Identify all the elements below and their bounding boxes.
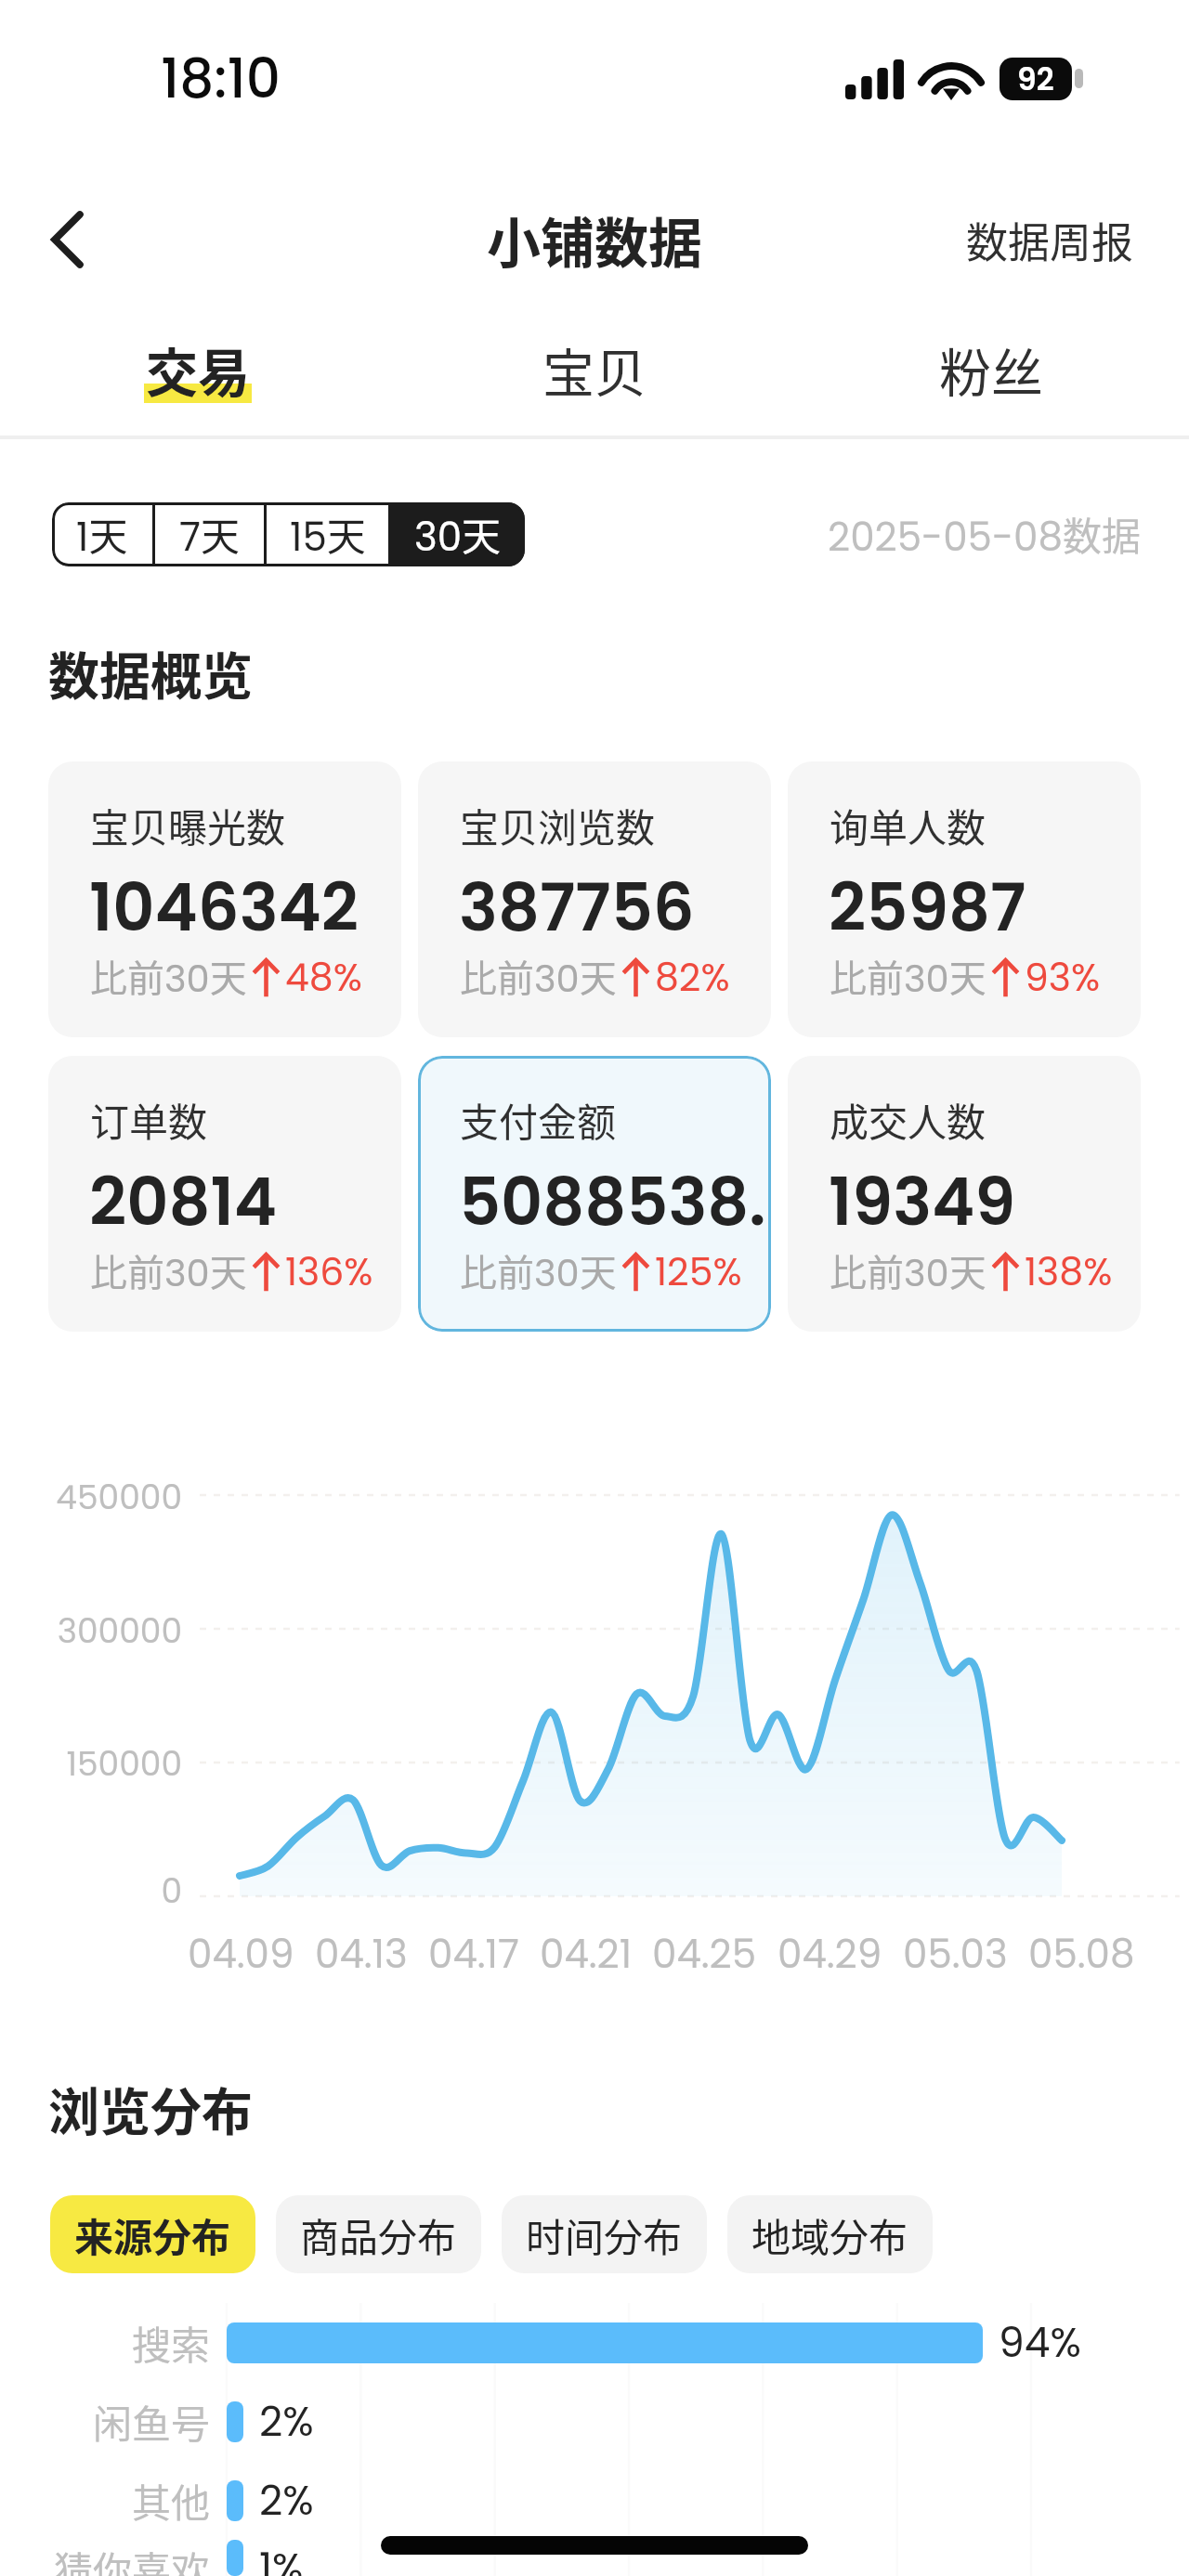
staticText: 数据概览 [48,635,254,709]
staticText: 闲鱼号 [0,2393,210,2450]
button[interactable]: 订单数 [48,1056,401,1332]
staticText: 粉丝 [939,332,1043,407]
staticText: 48% [285,951,362,1004]
staticText: 比前30天 [460,949,617,1005]
button[interactable]: 交易 [0,309,396,428]
staticText: 猜你喜欢 [0,2540,210,2576]
staticText: 300000 [0,1607,182,1654]
staticText: 25987 [829,862,1026,953]
staticText: 05.03 [903,1927,1008,1982]
button[interactable]: 搜索 [0,2303,1189,2382]
button[interactable]: 数据周报 [959,199,1142,281]
staticText: 2025-05-08数据 [828,505,1141,564]
button[interactable]: 闲鱼号 [0,2382,1189,2461]
staticText: 搜索 [0,2314,210,2371]
staticText: 宝贝浏览数 [460,797,656,853]
staticText: 1046342 [89,862,359,953]
staticText: 成交人数 [830,1091,986,1148]
staticText: 18:10 [161,41,281,116]
staticText: 94% [999,2314,1081,2372]
staticText: 7天 [179,505,240,564]
staticText: 交易 [146,332,250,407]
staticText: 138% [1025,1245,1113,1298]
staticText: 1天 [76,505,128,564]
staticText: 宝贝曝光数 [90,797,286,853]
button[interactable]: 粉丝 [792,309,1189,428]
button[interactable]: 7天 [155,502,264,566]
button[interactable]: 时间分布 [502,2195,707,2273]
staticText: 04.13 [315,1927,408,1982]
staticText: 30天 [414,505,502,564]
staticText: 19349 [829,1156,1016,1247]
button[interactable]: 宝贝浏览数 [418,761,771,1037]
staticText: 2% [259,2393,314,2451]
staticText: 0 [0,1867,182,1914]
staticText: 商品分布 [300,2206,457,2263]
button[interactable]: Back [13,186,121,293]
button[interactable]: 商品分布 [276,2195,481,2273]
staticText: 93% [1025,951,1101,1004]
button[interactable]: 15天 [267,502,388,566]
staticText: 04.21 [540,1927,633,1982]
button[interactable]: 支付金额 [418,1056,771,1332]
button[interactable]: 来源分布 [50,2195,255,2273]
staticText: 询单人数 [830,797,986,853]
staticText: 浏览分布 [48,2071,254,2145]
staticText: 92 [1017,58,1054,100]
staticText: 1% [259,2540,304,2576]
staticText: 小铺数据 [487,201,703,279]
staticText: 82% [655,951,730,1004]
staticText: 387756 [459,862,695,953]
staticText: 地域分布 [751,2206,908,2263]
staticText: 20814 [89,1156,278,1247]
staticText: 04.29 [777,1927,882,1982]
staticText: 5088538.0 [459,1156,771,1247]
staticText: 比前30天 [90,1243,247,1299]
staticText: 136% [285,1245,373,1298]
staticText: 450000 [0,1474,182,1520]
button[interactable]: 1天 [52,502,152,566]
button[interactable]: 宝贝曝光数 [48,761,401,1037]
staticText: 时间分布 [526,2206,683,2263]
button[interactable]: 询单人数 [788,761,1141,1037]
staticText: 数据周报 [966,210,1134,270]
button[interactable]: 30天 [391,502,525,566]
button[interactable]: 宝贝 [396,309,792,428]
staticText: 比前30天 [90,949,247,1005]
staticText: 比前30天 [830,949,986,1005]
button[interactable]: 其他 [0,2461,1189,2540]
staticText: 125% [655,1245,742,1298]
staticText: 05.08 [1028,1927,1135,1982]
button[interactable]: 地域分布 [727,2195,933,2273]
staticText: 订单数 [90,1091,208,1148]
staticText: 2% [259,2472,314,2530]
staticText: 04.09 [188,1927,294,1982]
staticText: 支付金额 [460,1091,617,1148]
staticText: 比前30天 [830,1243,986,1299]
staticText: 150000 [0,1740,182,1787]
button[interactable]: 猜你喜欢 [0,2540,1189,2576]
staticText: 比前30天 [460,1243,617,1299]
staticText: 宝贝 [542,332,647,407]
staticText: 来源分布 [74,2206,231,2263]
staticText: 其他 [0,2472,210,2529]
staticText: 04.25 [652,1927,757,1982]
staticText: 15天 [290,505,366,564]
button[interactable]: 成交人数 [788,1056,1141,1332]
staticText: 04.17 [428,1927,519,1982]
